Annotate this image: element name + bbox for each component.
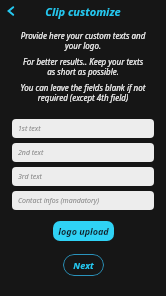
button[interactable]: Next	[63, 254, 104, 276]
button[interactable]: 1st text	[12, 119, 154, 138]
staticText: Clip customize	[45, 4, 121, 19]
staticText: logo upload	[58, 225, 109, 237]
staticText: You can leave the fields blank if not re…	[16, 82, 150, 103]
button[interactable]: 3rd text	[12, 167, 154, 186]
staticText: Provide here your custom texts and your …	[18, 30, 148, 51]
staticText: For better results.. Keep your texts as …	[18, 56, 148, 77]
staticText: Next	[73, 259, 94, 271]
button[interactable]: logo upload	[53, 221, 114, 241]
staticText: 2nd text	[18, 148, 44, 158]
staticText: 1st text	[18, 124, 41, 134]
button[interactable]: Contact infos (mandatory)	[12, 191, 154, 210]
staticText: Contact infos (mandatory)	[18, 196, 100, 206]
staticText: 3rd text	[18, 172, 42, 182]
button[interactable]: Back	[2, 2, 20, 20]
button[interactable]: 2nd text	[12, 143, 154, 162]
